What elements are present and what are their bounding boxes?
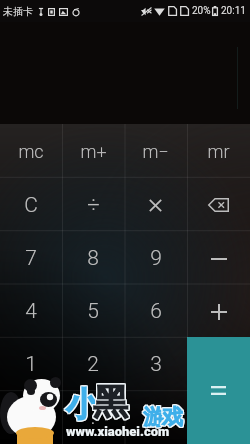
staticText: 戏	[163, 405, 184, 431]
button[interactable]: Backspace	[187, 178, 250, 232]
other: Equals	[211, 386, 226, 395]
other: Minus	[211, 251, 227, 267]
staticText: 小	[65, 383, 98, 425]
staticText: 黑	[94, 381, 129, 425]
staticText: 游	[143, 404, 164, 430]
staticText: 1	[25, 352, 37, 377]
button[interactable]: 7	[0, 232, 62, 285]
staticText: 黑	[93, 379, 128, 423]
staticText: 黑	[94, 380, 129, 424]
button[interactable]: 1	[0, 338, 62, 391]
button[interactable]: Multiply	[124, 178, 187, 232]
staticText: ÷	[87, 192, 100, 218]
staticText: 戏	[161, 404, 182, 430]
other: Plus	[211, 304, 227, 320]
button[interactable]	[187, 391, 250, 444]
button[interactable]: C	[0, 178, 62, 232]
button[interactable]: 0	[0, 391, 62, 444]
staticText: 游	[142, 404, 163, 430]
other: Backspace	[208, 198, 229, 212]
staticText: 戏	[162, 405, 183, 431]
staticText: C	[24, 193, 38, 218]
staticText: 8	[87, 246, 99, 271]
other: Muted	[141, 7, 152, 16]
staticText: 游	[142, 405, 163, 431]
staticText: 未插卡	[3, 5, 33, 18]
button[interactable]: 2	[62, 338, 124, 391]
button[interactable]: %	[124, 391, 187, 444]
staticText: mr	[207, 141, 230, 162]
staticText: 游	[144, 405, 165, 431]
staticText: 戏	[163, 403, 184, 429]
staticText: 游	[144, 403, 165, 429]
staticText: 小	[65, 384, 98, 426]
staticText: 黑	[92, 379, 127, 423]
staticText: 戏	[162, 404, 183, 430]
other: Battery	[212, 6, 218, 16]
staticText: 7	[25, 246, 37, 271]
staticText: 小	[65, 385, 98, 427]
staticText: %	[148, 406, 163, 429]
button[interactable]: 4	[0, 285, 62, 338]
button[interactable]: 6	[124, 285, 187, 338]
staticText: 小	[66, 383, 99, 425]
staticText: 4	[25, 299, 37, 324]
staticText: 游	[144, 404, 165, 430]
staticText: m+	[80, 141, 107, 162]
staticText: mc	[18, 141, 44, 162]
staticText: 黑	[94, 379, 129, 423]
staticText: 游	[143, 403, 164, 429]
button[interactable]: Plus	[187, 285, 250, 338]
staticText: 戏	[163, 404, 184, 430]
staticText: 20:11	[221, 5, 246, 17]
staticText: 黑	[92, 381, 127, 425]
staticText: 3	[150, 352, 162, 377]
button[interactable]: 8	[62, 232, 124, 285]
staticText: m−	[142, 141, 169, 162]
staticText: 戏	[162, 403, 183, 429]
other: Multiply	[149, 199, 162, 212]
button[interactable]: 3	[124, 338, 187, 391]
staticText: 5	[87, 299, 99, 324]
staticText: 2	[87, 352, 99, 377]
staticText: 6	[150, 299, 162, 324]
staticText: 小	[67, 384, 100, 426]
staticText: www.xiaohei.com	[66, 424, 170, 439]
staticText: 黑	[93, 380, 128, 424]
button[interactable]: ÷	[62, 178, 124, 232]
button[interactable]: mr	[187, 124, 250, 178]
staticText: 戏	[161, 403, 182, 429]
button[interactable]: m+	[62, 124, 124, 178]
staticText: .	[90, 405, 96, 430]
button[interactable]: 5	[62, 285, 124, 338]
staticText: 游	[143, 405, 164, 431]
button[interactable]: Minus	[187, 232, 250, 285]
staticText: 黑	[92, 380, 127, 424]
staticText: 小	[66, 384, 99, 426]
button[interactable]: m−	[124, 124, 187, 178]
staticText: 戏	[161, 405, 182, 431]
staticText: 0	[25, 405, 37, 430]
staticText: 黑	[93, 381, 128, 425]
staticText: 9	[150, 246, 162, 271]
button[interactable]: Equals	[187, 337, 250, 444]
button[interactable]	[187, 338, 250, 391]
button[interactable]: .	[62, 391, 124, 444]
staticText: 游	[142, 403, 163, 429]
button[interactable]: mc	[0, 124, 62, 178]
button[interactable]: 9	[124, 232, 187, 285]
staticText: 小	[67, 383, 100, 425]
other: Wi-Fi	[154, 7, 165, 16]
staticText: 小	[66, 385, 99, 427]
staticText: 20%	[192, 5, 211, 17]
staticText: 小	[67, 385, 100, 427]
